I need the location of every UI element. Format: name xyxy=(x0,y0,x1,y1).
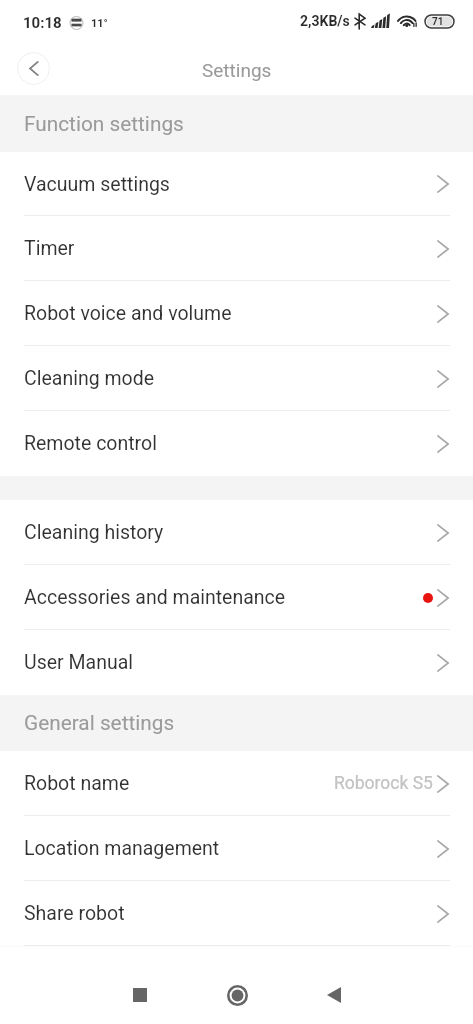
staticText: Share robot xyxy=(24,902,125,925)
button[interactable]: Vacuum settings xyxy=(0,152,473,216)
staticText: Function settings xyxy=(24,112,184,136)
staticText: Vacuum settings xyxy=(24,173,170,196)
staticText: Settings xyxy=(202,59,272,81)
button[interactable]: Back xyxy=(302,966,366,1024)
staticText: Roborock S5 xyxy=(334,773,433,794)
staticText: Cleaning history xyxy=(24,521,164,544)
staticText: 2,3KB/s xyxy=(300,13,350,29)
staticText: 11° xyxy=(91,17,108,30)
button[interactable]: Back xyxy=(17,52,50,85)
staticText: Remote control xyxy=(24,432,157,455)
staticText: Cleaning mode xyxy=(24,367,155,390)
button[interactable]: Location management xyxy=(0,816,473,881)
button[interactable]: Cleaning history xyxy=(0,500,473,565)
button[interactable]: Accessories and maintenance xyxy=(0,565,473,630)
button[interactable]: Robot voice and volume xyxy=(0,281,473,346)
button[interactable]: Timer xyxy=(0,216,473,281)
button[interactable]: Robot name xyxy=(0,751,473,816)
button[interactable]: Remote control xyxy=(0,411,473,476)
button[interactable]: Share robot xyxy=(0,881,473,946)
staticText: Robot voice and volume xyxy=(24,302,232,325)
button[interactable]: Home xyxy=(205,966,269,1024)
staticText: 10:18 xyxy=(23,14,62,32)
staticText: Accessories and maintenance xyxy=(24,586,286,609)
button[interactable]: User Manual xyxy=(0,630,473,695)
button[interactable]: Recent apps xyxy=(108,966,172,1024)
staticText: General settings xyxy=(24,711,175,735)
button[interactable]: Cleaning mode xyxy=(0,346,473,411)
staticText: Robot name xyxy=(24,772,130,795)
staticText: 71 xyxy=(432,16,444,28)
staticText: Location management xyxy=(24,837,220,860)
staticText: User Manual xyxy=(24,651,133,674)
staticText: Timer xyxy=(24,237,75,260)
